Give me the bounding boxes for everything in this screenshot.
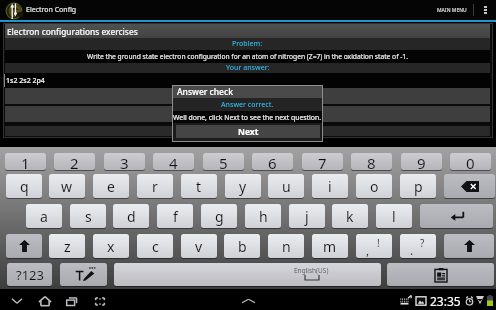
button[interactable]: 1s2 2s2 2p4 [5, 73, 490, 88]
button[interactable]: Next [176, 125, 320, 138]
button[interactable]: Expand status bar [236, 291, 260, 310]
button[interactable]: Hide keyboard [5, 291, 29, 310]
staticText: 6 [268, 153, 277, 170]
button[interactable]: s [70, 204, 106, 228]
staticText: . [410, 242, 414, 258]
staticText: Electron configurations exercises [7, 26, 138, 37]
staticText: s [85, 207, 92, 226]
staticText: 9 [417, 153, 426, 170]
staticText: 0 [466, 153, 475, 170]
staticText: Your answer: [226, 63, 270, 73]
button[interactable]: t [181, 174, 217, 198]
button[interactable]: k [332, 204, 368, 228]
staticText: ?123 [16, 266, 44, 284]
staticText: English(US) [294, 266, 329, 275]
staticText: f [173, 207, 178, 226]
button[interactable]: 4 [153, 153, 194, 170]
staticText: Problem: [232, 39, 263, 49]
button[interactable]: 2 [54, 153, 95, 170]
button[interactable]: 9 [401, 153, 442, 170]
button[interactable]: c [137, 234, 173, 258]
button[interactable] [5, 106, 490, 122]
staticText: r [152, 177, 158, 196]
button[interactable]: v [181, 234, 217, 258]
button[interactable]: 8 [351, 153, 392, 170]
button[interactable]: d [113, 204, 149, 228]
button[interactable]: a [26, 204, 62, 228]
staticText: q [20, 177, 29, 196]
staticText: Answer check [177, 86, 233, 98]
button[interactable]: 6 [252, 153, 293, 170]
button[interactable]: More options [474, 0, 496, 20]
staticText: MAIN MENU [437, 7, 467, 14]
button[interactable]: o [356, 174, 392, 198]
button[interactable]: w [49, 174, 85, 198]
staticText: u [282, 177, 291, 196]
staticText: 5 [219, 153, 228, 170]
button[interactable]: u [268, 174, 304, 198]
button[interactable]: z [49, 234, 85, 258]
staticText: o [370, 177, 379, 196]
button[interactable]: p [400, 174, 436, 198]
staticText: 4 [169, 153, 178, 170]
staticText: 1 [21, 153, 30, 170]
button[interactable]: Shift [444, 234, 494, 258]
button[interactable]: q [6, 174, 42, 198]
button[interactable]: . [400, 234, 436, 258]
button[interactable]: r [137, 174, 173, 198]
staticText: a [40, 207, 48, 226]
button[interactable]: f [157, 204, 193, 228]
button[interactable]: n [268, 234, 304, 258]
staticText: Well done, click Next to see the next qu… [173, 113, 322, 122]
staticText: d [127, 207, 136, 226]
staticText: v [195, 237, 203, 256]
staticText: g [215, 207, 224, 226]
button[interactable]: Backspace [444, 174, 495, 198]
button[interactable]: Space [114, 263, 381, 286]
button[interactable]: ?123 [7, 263, 52, 286]
button[interactable]: i [312, 174, 348, 198]
button[interactable] [5, 88, 490, 104]
staticText: 1s2 2s2 2p4 [6, 76, 45, 86]
button[interactable]: 1 [5, 153, 46, 170]
button[interactable]: j [289, 204, 325, 228]
button[interactable]: , [356, 234, 392, 258]
button[interactable]: 7 [302, 153, 343, 170]
button[interactable]: 5 [203, 153, 244, 170]
button[interactable]: e [93, 174, 129, 198]
staticText: ? [420, 236, 425, 250]
button[interactable]: 0 [450, 153, 491, 170]
button[interactable]: y [225, 174, 261, 198]
button[interactable]: Shift [6, 234, 42, 258]
button[interactable]: Enter [420, 204, 493, 228]
button[interactable]: Recent apps [59, 291, 83, 310]
button[interactable]: Home [33, 291, 57, 310]
staticText: c [152, 237, 159, 256]
staticText: z [64, 237, 71, 256]
staticText: 23:35 [430, 293, 461, 309]
staticText: t [196, 177, 202, 196]
button[interactable]: Handwriting [60, 263, 107, 286]
staticText: l [392, 207, 396, 226]
button[interactable]: h [245, 204, 281, 228]
button[interactable]: g [201, 204, 237, 228]
staticText: n [282, 237, 291, 256]
button[interactable]: MAIN MENU [431, 0, 473, 20]
button[interactable]: Screenshot [88, 291, 112, 310]
staticText: h [259, 207, 268, 226]
staticText: i [328, 177, 332, 196]
staticText: 3 [120, 153, 129, 170]
staticText: x [107, 237, 115, 256]
staticText: e [107, 177, 115, 196]
staticText: Answer correct. [221, 100, 274, 110]
staticText: , [366, 242, 370, 258]
button[interactable]: Clipboard [387, 263, 494, 286]
button[interactable]: l [376, 204, 412, 228]
staticText: 8 [367, 153, 376, 170]
staticText: m [323, 237, 337, 256]
staticText: j [305, 207, 309, 226]
button[interactable]: x [93, 234, 129, 258]
button[interactable]: b [224, 234, 260, 258]
button[interactable]: 3 [104, 153, 145, 170]
button[interactable]: m [312, 234, 348, 258]
